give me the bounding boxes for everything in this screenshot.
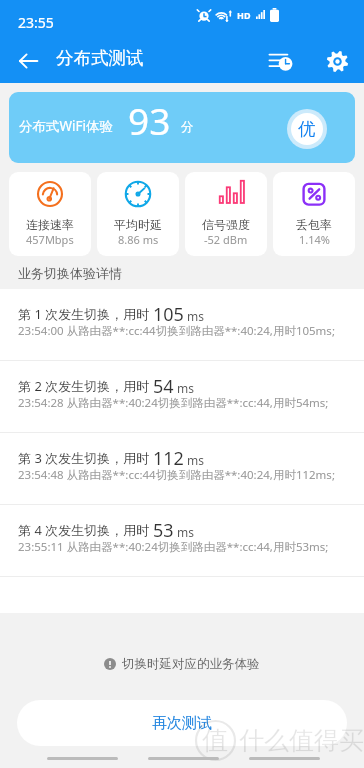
staticText: 第 2 次发生切换，用时	[18, 377, 153, 395]
staticText: 1.14%	[299, 232, 330, 247]
staticText: 切换时延对应的业务体验	[122, 656, 260, 672]
staticText: 丢包率	[296, 217, 332, 232]
staticText: HD	[237, 9, 251, 21]
staticText: 第 3 次发生切换，用时	[18, 449, 153, 467]
staticText: 23:54:48 从路由器**:cc:44切换到路由器**:40:24,用时11…	[18, 467, 335, 483]
staticText: 再次测试	[152, 714, 212, 733]
staticText: 105	[153, 302, 184, 327]
staticText: -52 dBm	[204, 232, 248, 247]
staticText: 93	[128, 95, 171, 145]
staticText: 信号强度	[202, 217, 250, 232]
staticText: ms	[174, 380, 195, 396]
staticText: 什么值得买	[239, 725, 364, 756]
staticText: 第 4 次发生切换，用时	[18, 521, 153, 539]
staticText: 分	[181, 119, 194, 135]
staticText: 业务切换体验详情	[18, 265, 122, 281]
button[interactable]: 信号强度	[185, 172, 267, 256]
button[interactable]: 第 4 次发生切换，用时	[0, 505, 364, 576]
button[interactable]: 平均时延	[97, 172, 179, 256]
staticText: 值	[202, 724, 228, 757]
staticText: ms	[174, 524, 195, 540]
button[interactable]: 第 1 次发生切换，用时	[0, 289, 364, 360]
button[interactable]: Settings	[313, 37, 361, 85]
staticText: 23:54:28 从路由器**:40:24切换到路由器**:cc:44,用时54…	[18, 395, 329, 411]
staticText: 平均时延	[114, 217, 162, 232]
staticText: 23:55:11 从路由器**:40:24切换到路由器**:cc:44,用时53…	[18, 539, 329, 555]
staticText: 53	[153, 518, 174, 543]
staticText: ms	[184, 308, 205, 324]
staticText: ms	[184, 452, 205, 468]
staticText: 23:55	[18, 13, 54, 32]
button[interactable]: 分布式WiFi体验	[9, 92, 355, 163]
staticText: 8.86 ms	[118, 232, 159, 247]
staticText: 分布式测试	[56, 47, 144, 69]
staticText: 优	[298, 118, 316, 140]
button[interactable]: 第 3 次发生切换，用时	[0, 433, 364, 504]
staticText: 112	[153, 446, 184, 471]
staticText: 54	[153, 374, 174, 399]
staticText: 23:54:00 从路由器**:cc:44切换到路由器**:40:24,用时10…	[18, 323, 335, 339]
staticText: 457Mbps	[26, 232, 74, 247]
button[interactable]: 第 2 次发生切换，用时	[0, 361, 364, 432]
button[interactable]: 再次测试	[17, 700, 347, 746]
staticText: 连接速率	[26, 217, 74, 232]
button[interactable]: 丢包率	[273, 172, 355, 256]
button[interactable]: History	[256, 37, 304, 85]
button[interactable]: 连接速率	[9, 172, 91, 256]
button[interactable]: Back	[6, 38, 51, 83]
staticText: 第 1 次发生切换，用时	[18, 305, 153, 323]
staticText: 分布式WiFi体验	[19, 117, 114, 135]
